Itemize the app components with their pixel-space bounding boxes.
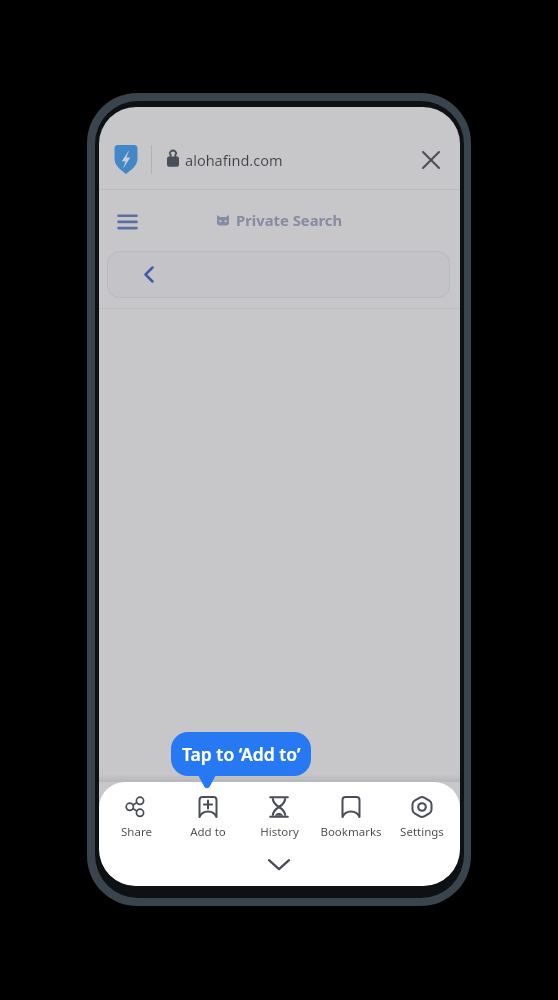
button[interactable]: Share [104,795,168,840]
staticText: Share [121,824,152,840]
staticText: Private Search [236,210,343,230]
staticText: Bookmarks [320,824,382,840]
staticText: Settings [400,824,444,840]
button[interactable]: Tap to ‘Add to’ [171,732,311,790]
button[interactable] [415,144,447,176]
button[interactable]: Add to [176,795,240,840]
button[interactable]: Bookmarks [319,795,383,840]
button[interactable] [259,851,299,879]
staticText: Tap to ‘Add to’ [182,742,301,766]
button[interactable] [107,251,450,298]
button[interactable] [109,207,145,237]
staticText: Add to [190,824,226,840]
button[interactable]: History [247,795,311,840]
staticText: History [260,824,299,840]
button[interactable] [107,137,145,182]
staticText: alohafind.com [185,150,283,170]
button[interactable]: Settings [390,795,454,840]
